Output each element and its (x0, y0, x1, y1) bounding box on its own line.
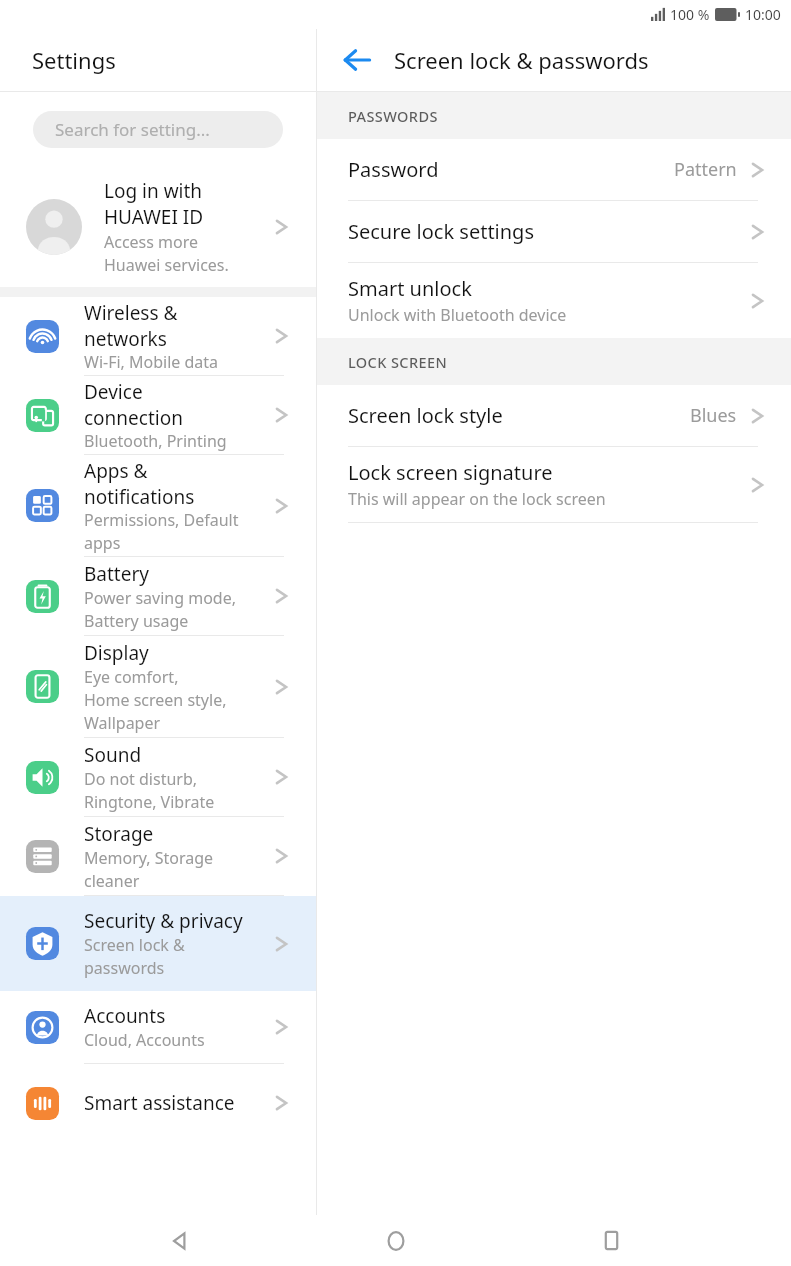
button[interactable]: Secure lock settings (317, 201, 791, 262)
button[interactable]: Smart assistance (0, 1064, 316, 1142)
button[interactable]: Accounts (0, 991, 316, 1063)
staticText: Screen lock style (348, 402, 503, 429)
button[interactable]: Screen lock style (317, 385, 791, 446)
staticText: Secure lock settings (348, 218, 534, 245)
staticText: Security & privacy (84, 908, 243, 934)
button[interactable]: Storage (0, 817, 316, 895)
button[interactable]: Security & privacy (0, 896, 316, 991)
button[interactable]: Sound (0, 738, 316, 816)
button[interactable]: Back (333, 36, 381, 84)
staticText: Sound (84, 742, 142, 768)
staticText: Power saving mode, Battery usage (84, 587, 236, 632)
button[interactable]: Home (361, 1215, 431, 1266)
staticText: Unlock with Bluetooth device (348, 304, 567, 326)
staticText: LOCK SCREEN (348, 352, 448, 372)
staticText: Permissions, Default apps (84, 509, 239, 554)
button[interactable]: Password (317, 139, 791, 200)
staticText: Access more Huawei services. (104, 231, 229, 276)
staticText: Cloud, Accounts (84, 1029, 205, 1051)
button[interactable]: Smart unlock (317, 263, 791, 338)
button[interactable]: Device connection (0, 376, 316, 454)
staticText: Wireless & networks (84, 300, 178, 351)
staticText: This will appear on the lock screen (348, 488, 606, 510)
button[interactable]: Apps & notifications (0, 455, 316, 556)
button[interactable]: Display (0, 636, 316, 737)
button[interactable]: Search for setting... (33, 111, 283, 148)
staticText: Smart unlock (348, 275, 472, 302)
staticText: Accounts (84, 1003, 166, 1029)
staticText: Password (348, 156, 439, 183)
staticText: 10:00 (745, 5, 781, 24)
staticText: Device connection (84, 379, 183, 430)
staticText: Bluetooth, Printing (84, 430, 227, 452)
staticText: Pattern (674, 157, 737, 182)
button[interactable]: Log in with HUAWEI ID (0, 166, 316, 287)
staticText: Storage (84, 821, 154, 847)
button[interactable]: Back (145, 1215, 215, 1266)
staticText: Search for setting... (55, 118, 210, 141)
staticText: Smart assistance (84, 1090, 235, 1116)
button[interactable]: Recents (576, 1215, 646, 1266)
staticText: 100 % (670, 5, 710, 24)
staticText: Settings (32, 45, 116, 75)
staticText: Battery (84, 561, 149, 587)
button[interactable]: Battery (0, 557, 316, 635)
button[interactable]: Wireless & networks (0, 297, 316, 375)
staticText: Do not disturb, Ringtone, Vibrate (84, 768, 215, 813)
staticText: Lock screen signature (348, 459, 553, 486)
staticText: Screen lock & passwords (394, 45, 649, 75)
staticText: Screen lock & passwords (84, 934, 185, 979)
staticText: Log in with HUAWEI ID (104, 178, 204, 230)
staticText: Memory, Storage cleaner (84, 847, 214, 892)
staticText: Display (84, 640, 149, 666)
staticText: Eye comfort, Home screen style, Wallpape… (84, 666, 227, 734)
button[interactable]: Lock screen signature (317, 447, 791, 522)
staticText: Apps & notifications (84, 458, 195, 509)
staticText: PASSWORDS (348, 106, 438, 126)
staticText: Blues (690, 403, 737, 428)
staticText: Wi-Fi, Mobile data (84, 351, 219, 373)
